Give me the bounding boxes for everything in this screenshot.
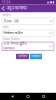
staticText: বাতিল <box>18 54 26 59</box>
button[interactable]: নির্বাচন করুন <box>2 30 54 36</box>
button[interactable]: Back <box>9 93 15 100</box>
staticText: সংরক্ষণ <box>31 54 41 59</box>
staticText: তারিখ <box>2 13 10 17</box>
button[interactable]: এক দিনের ছুটির <box>2 42 54 51</box>
button[interactable]: সংরক্ষণ <box>30 54 42 59</box>
staticText: বিষয় নির্বাচন <box>2 37 20 41</box>
button[interactable]: Recents <box>40 93 47 99</box>
staticText: এক দিনের ছুটির <box>3 42 26 46</box>
button[interactable]: Date : 08 <box>2 18 54 24</box>
staticText: ধরন <box>2 25 8 29</box>
staticText: Date : 08 <box>3 18 18 24</box>
button[interactable]: Home <box>25 93 31 100</box>
staticText: 10:24 <box>2 0 11 4</box>
staticText: নতুন আবেদন <box>6 6 26 11</box>
staticText: নির্বাচন করুন <box>3 31 22 36</box>
button[interactable]: Back <box>0 5 6 12</box>
staticText: আবেদন <box>3 46 14 51</box>
button[interactable]: বাতিল <box>16 54 29 59</box>
